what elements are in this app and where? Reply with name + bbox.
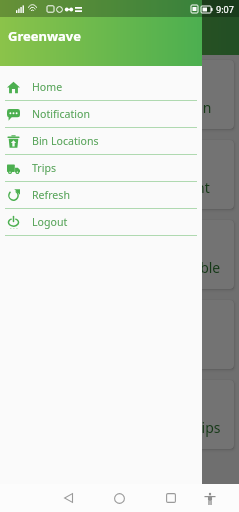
button[interactable]: Your weekly pickup plan — [5, 300, 234, 369]
button[interactable]: View your latest Notification — [5, 60, 234, 129]
staticText: Refresh — [32, 188, 70, 202]
button[interactable]: Bin Locations — [0, 128, 202, 154]
staticText: 9:07 — [216, 3, 234, 15]
button[interactable]: Refresh — [0, 182, 202, 208]
button[interactable]: See the history of all your Trips — [5, 380, 234, 449]
button[interactable]: Back — [43, 485, 94, 511]
button[interactable]: Recents — [145, 485, 196, 511]
staticText: See the history of all your Trips — [18, 418, 221, 437]
button[interactable]: Locate the closest bin Point — [5, 140, 234, 209]
staticText: Locate the closest bin Point — [30, 178, 210, 197]
button[interactable]: Accessibility — [198, 487, 221, 510]
button[interactable]: Logout — [0, 209, 202, 235]
staticText: Greenwave — [8, 27, 82, 45]
staticText: Logout — [32, 215, 68, 229]
staticText: Home — [32, 80, 63, 94]
button[interactable]: Trips — [0, 155, 202, 181]
staticText: Bin Locations — [32, 134, 99, 148]
button[interactable]: Home — [0, 74, 202, 100]
button[interactable]: Learn what waste is Recyclable — [5, 220, 234, 289]
staticText: Learn what waste is Recyclable — [18, 258, 221, 277]
button[interactable]: Home — [94, 485, 145, 511]
button[interactable]: Notification — [0, 101, 202, 127]
staticText: View your latest Notification — [27, 98, 212, 117]
staticText: Notification — [32, 107, 90, 121]
staticText: Trips — [32, 161, 57, 175]
